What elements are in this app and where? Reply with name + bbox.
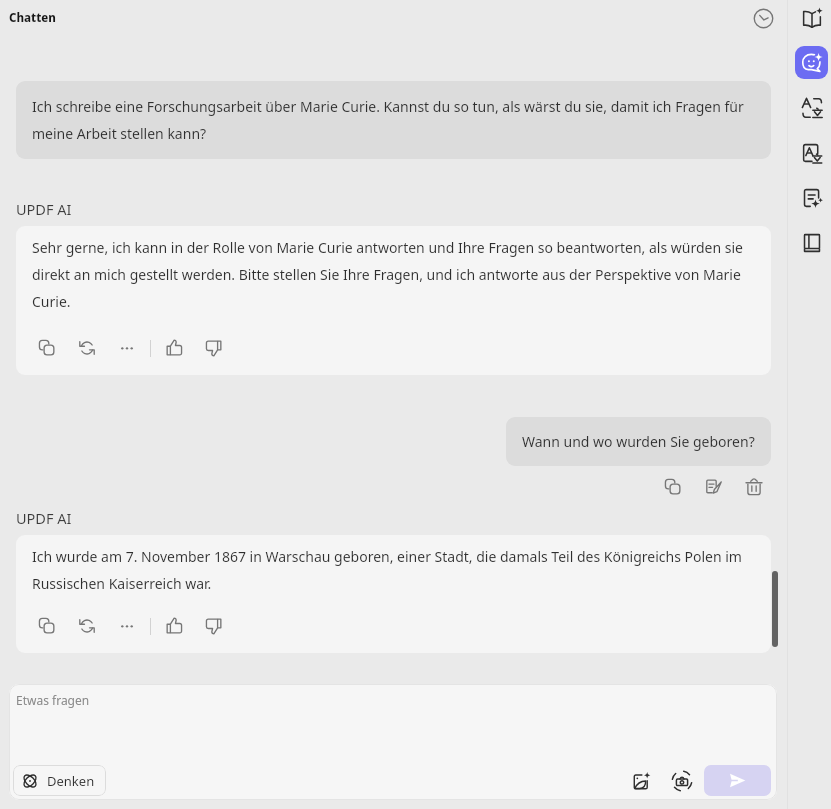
button[interactable]: Gefällt mir xyxy=(164,616,184,636)
button[interactable]: Ich wurde am 7. November 1867 in Warscha… xyxy=(16,535,771,653)
button[interactable]: Bearbeiten xyxy=(704,477,724,497)
staticText: Chatten xyxy=(9,10,56,26)
button[interactable]: Scannen xyxy=(668,767,696,795)
button[interactable]: Verlauf xyxy=(750,5,776,31)
staticText: Wann und wo wurden Sie geboren? xyxy=(522,432,755,451)
button[interactable]: Löschen xyxy=(744,477,764,497)
button[interactable]: Dokument übersetzen xyxy=(795,136,828,169)
button[interactable]: Kopieren xyxy=(37,616,57,636)
staticText: Ich schreibe eine Forschungsarbeit über … xyxy=(32,97,755,143)
button[interactable]: Sehr gerne, ich kann in der Rolle von Ma… xyxy=(16,226,771,375)
button[interactable]: Kopieren xyxy=(663,477,683,497)
button[interactable]: Kopieren xyxy=(37,338,57,358)
button[interactable]: Buch xyxy=(795,226,828,259)
button[interactable]: Mehr xyxy=(117,616,137,636)
staticText: Sehr gerne, ich kann in der Rolle von Ma… xyxy=(32,238,755,311)
button[interactable]: Gefällt mir xyxy=(164,338,184,358)
button[interactable]: Senden xyxy=(704,765,771,796)
staticText: Denken xyxy=(47,772,95,790)
button[interactable]: Lesen xyxy=(795,1,828,34)
button[interactable]: Wann und wo wurden Sie geboren? xyxy=(506,417,771,466)
button[interactable]: Neu generieren xyxy=(77,616,97,636)
button[interactable]: Chat xyxy=(795,46,828,79)
staticText: UPDF AI xyxy=(16,508,72,528)
button[interactable]: Denken xyxy=(13,765,106,796)
staticText: UPDF AI xyxy=(16,199,72,219)
button[interactable]: Gefällt mir nicht xyxy=(204,616,224,636)
button[interactable]: Mehr xyxy=(117,338,137,358)
staticText: Ich wurde am 7. November 1867 in Warscha… xyxy=(32,547,755,593)
staticText: Etwas fragen xyxy=(16,692,90,708)
button[interactable]: Bild xyxy=(627,767,655,795)
button[interactable]: Neu generieren xyxy=(77,338,97,358)
button[interactable]: Gefällt mir nicht xyxy=(204,338,224,358)
button[interactable]: Übersetzen xyxy=(795,91,828,124)
button[interactable]: Zusammenfassen xyxy=(795,181,828,214)
button[interactable]: Ich schreibe eine Forschungsarbeit über … xyxy=(16,81,771,159)
